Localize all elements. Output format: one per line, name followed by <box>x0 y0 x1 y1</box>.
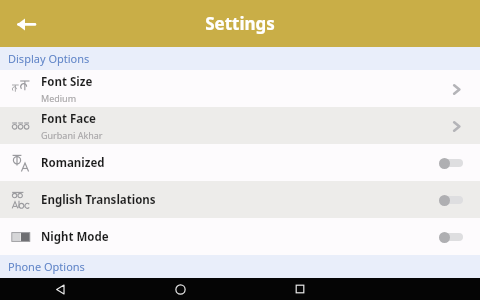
staticText: Display Options <box>8 51 90 66</box>
staticText: Gurbani Akhar <box>41 129 103 141</box>
staticText: English Translations <box>41 192 156 208</box>
button[interactable]: Toggle <box>438 226 468 248</box>
staticText: Night Mode <box>41 229 109 245</box>
button[interactable]: Font Size <box>0 70 480 107</box>
button[interactable]: Recent apps <box>240 278 360 300</box>
button[interactable]: Font Face <box>0 107 480 144</box>
button[interactable]: English Translations <box>0 181 480 218</box>
button[interactable]: Back <box>0 278 120 300</box>
button[interactable]: Romanized <box>0 144 480 181</box>
staticText: Medium <box>41 92 77 104</box>
staticText: Font Size <box>41 74 93 90</box>
staticText: Phone Options <box>8 259 85 274</box>
staticText: Romanized <box>41 155 105 171</box>
button[interactable]: Home <box>120 278 240 300</box>
staticText: Font Face <box>41 111 96 127</box>
button[interactable]: Back <box>6 4 46 44</box>
button[interactable]: Night Mode <box>0 218 480 255</box>
staticText: Settings <box>205 12 275 35</box>
button[interactable]: Toggle <box>438 189 468 211</box>
button[interactable]: Toggle <box>438 152 468 174</box>
